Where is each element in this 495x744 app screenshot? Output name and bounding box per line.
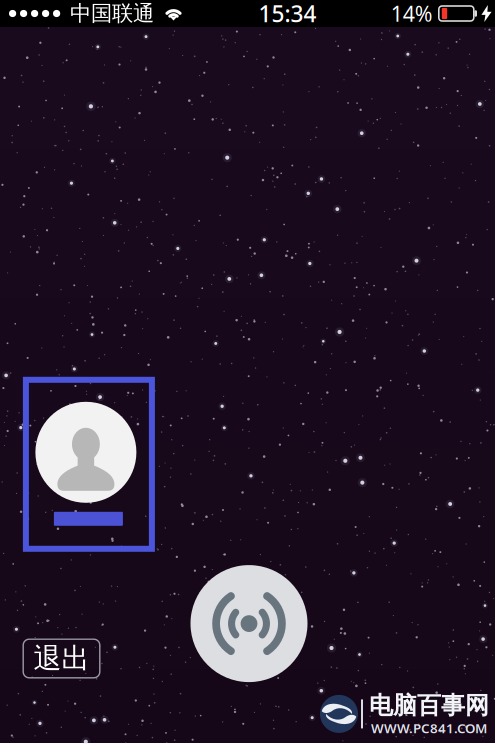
staticText: WWW.PC841.COM: [371, 719, 487, 737]
staticText: 中国联通: [70, 0, 154, 27]
button[interactable]: 退出: [22, 638, 100, 678]
staticText: 15:34: [258, 0, 316, 28]
staticText: 14%: [391, 0, 433, 28]
staticText: 电脑百事网: [369, 691, 489, 720]
staticText: 退出: [33, 641, 89, 676]
button[interactable]: Start personal hotspot: [190, 565, 307, 682]
